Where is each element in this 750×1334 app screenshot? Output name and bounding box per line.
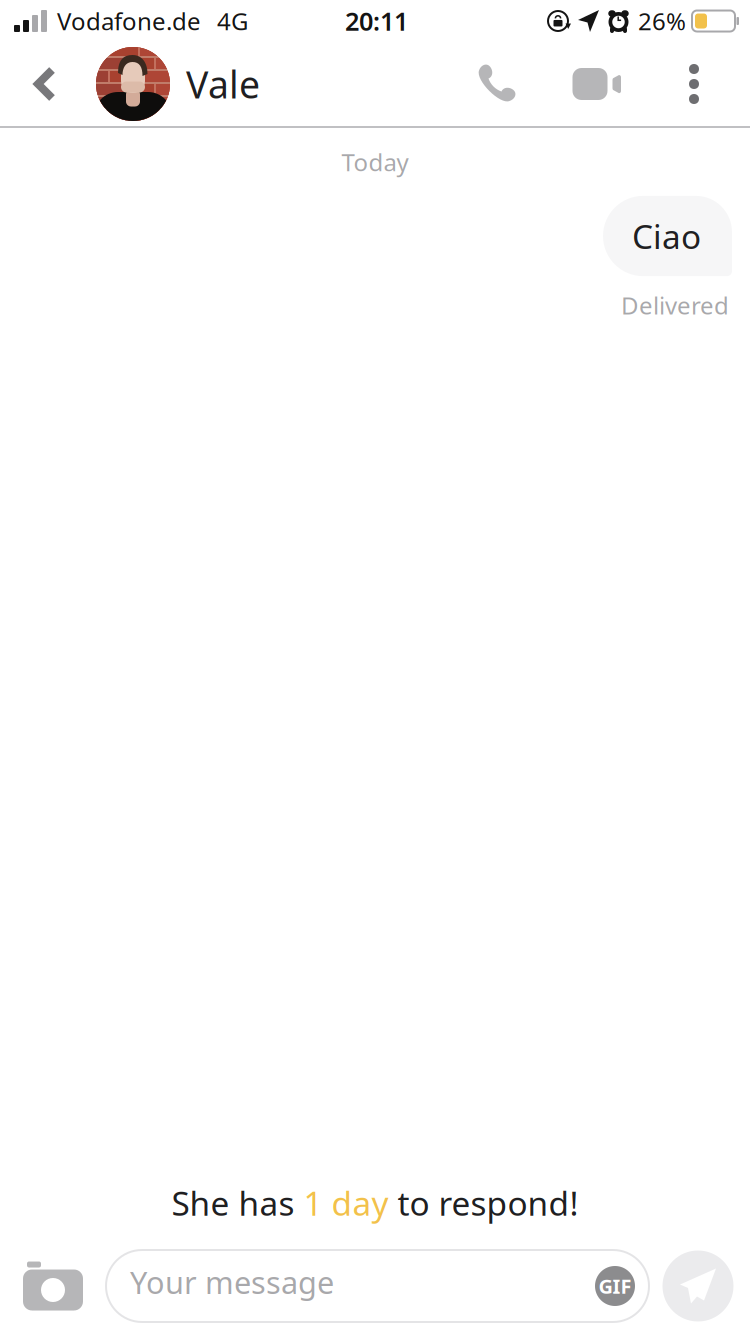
button[interactable]: Video call: [550, 42, 644, 126]
staticText: GIF: [598, 1273, 631, 1299]
staticText: 4G: [217, 5, 248, 37]
button[interactable]: Call: [461, 42, 533, 126]
staticText: to respond!: [388, 1181, 578, 1225]
staticText: Vale: [186, 59, 260, 109]
staticText: 20:11: [345, 4, 408, 38]
staticText: Your message: [130, 1262, 334, 1302]
staticText: 1 day: [303, 1181, 388, 1225]
button[interactable]: Back: [0, 42, 64, 126]
staticText: Ciao: [632, 214, 701, 258]
staticText: Today: [341, 146, 408, 178]
staticText: Vodafone.de: [57, 5, 201, 37]
staticText: She has: [171, 1181, 303, 1225]
button[interactable]: Camera: [0, 1250, 106, 1322]
button[interactable]: More options: [659, 42, 729, 126]
button[interactable]: Your message: [106, 1250, 649, 1322]
button[interactable]: Vale: [64, 42, 260, 126]
staticText: 26%: [638, 5, 686, 37]
staticText: Delivered: [621, 289, 729, 321]
button[interactable]: Send: [649, 1250, 747, 1322]
